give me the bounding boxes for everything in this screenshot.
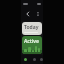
button[interactable]: Back [23,9,33,19]
button[interactable]: More options [35,9,41,19]
button[interactable]: Profile [39,55,43,64]
staticText: Today [24,24,39,31]
staticText: Active [24,38,39,45]
button[interactable]: Stats [30,55,39,64]
button[interactable]: Active [22,36,42,54]
button[interactable]: Today [22,22,42,35]
button[interactable]: Home [21,55,30,64]
